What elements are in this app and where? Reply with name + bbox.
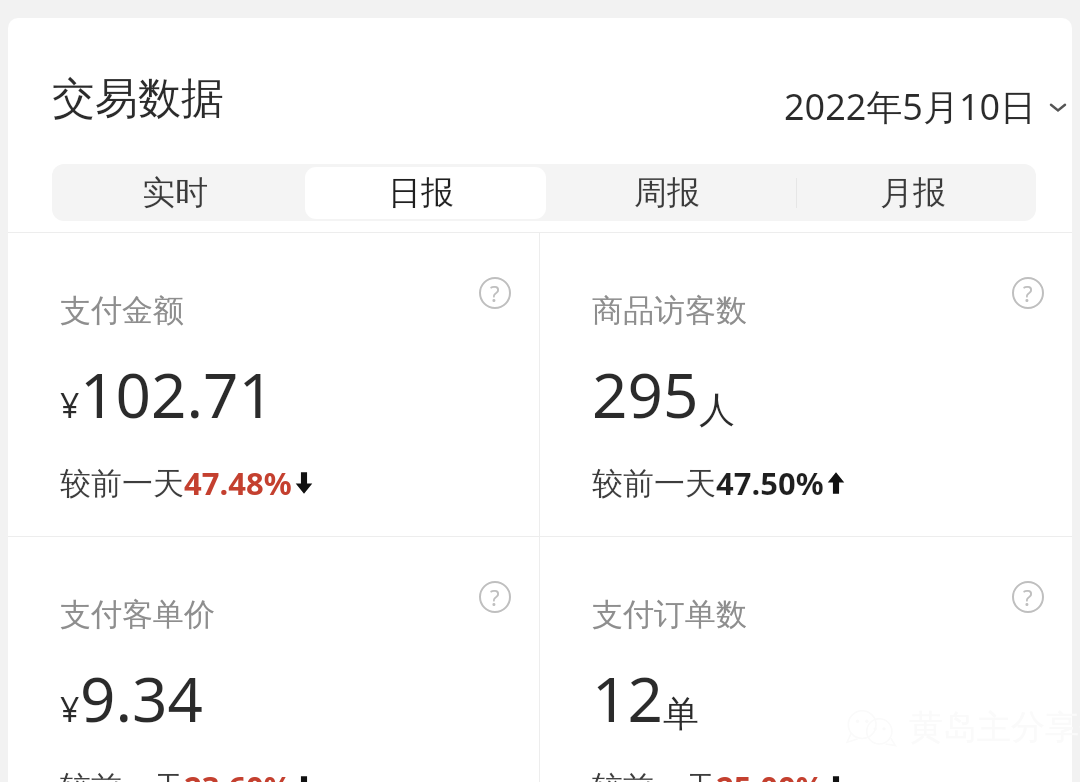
button[interactable]: 周报 (544, 164, 790, 221)
staticText: 295 (592, 352, 699, 436)
staticText: 23.60% (184, 766, 292, 782)
staticText: 商品访客数 (592, 291, 747, 330)
staticText: 较前一天 (592, 768, 716, 782)
staticText: 47.50% (716, 462, 824, 504)
staticText: 月报 (880, 172, 946, 214)
staticText: 单 (663, 691, 699, 736)
staticText: ? (490, 278, 500, 308)
staticText: 47.48% (184, 462, 292, 504)
staticText: 较前一天 (60, 464, 184, 503)
staticText: ? (490, 582, 500, 612)
button[interactable]: 帮助说明 (1010, 579, 1046, 615)
button[interactable]: 帮助说明 (1010, 275, 1046, 311)
staticText: ? (1023, 582, 1033, 612)
staticText: 黄岛主分享会 (909, 706, 1080, 749)
button[interactable]: 帮助说明 (477, 275, 513, 311)
button[interactable]: 帮助说明 (477, 579, 513, 615)
staticText: 支付订单数 (592, 595, 747, 634)
button[interactable]: 实时 (52, 164, 298, 221)
staticText: 较前一天 (60, 768, 184, 782)
button[interactable]: 支付客单价 (8, 537, 539, 782)
staticText: 12 (592, 656, 663, 740)
staticText: 日报 (388, 172, 454, 214)
staticText: 102.71 (80, 352, 274, 436)
staticText: ? (1023, 278, 1033, 308)
button[interactable]: 日报 (298, 164, 544, 221)
staticText: 支付金额 (60, 291, 184, 330)
staticText: 实时 (142, 172, 208, 214)
button[interactable]: 2022年5月10日 (778, 76, 1072, 137)
staticText: ¥ (60, 686, 80, 732)
button[interactable]: 支付金额 (8, 233, 539, 536)
staticText: 支付客单价 (60, 595, 215, 634)
staticText: 9.34 (80, 656, 204, 740)
staticText: 较前一天 (592, 464, 716, 503)
staticText: 交易数据 (52, 72, 224, 126)
staticText: 25.00% (716, 766, 824, 782)
staticText: 2022年5月10日 (784, 82, 1037, 131)
staticText: 人 (699, 387, 735, 432)
staticText: ¥ (60, 382, 80, 428)
button[interactable]: 商品访客数 (540, 233, 1072, 536)
staticText: 周报 (634, 172, 700, 214)
button[interactable]: 月报 (790, 164, 1036, 221)
button[interactable]: 支付订单数 (540, 537, 1072, 782)
